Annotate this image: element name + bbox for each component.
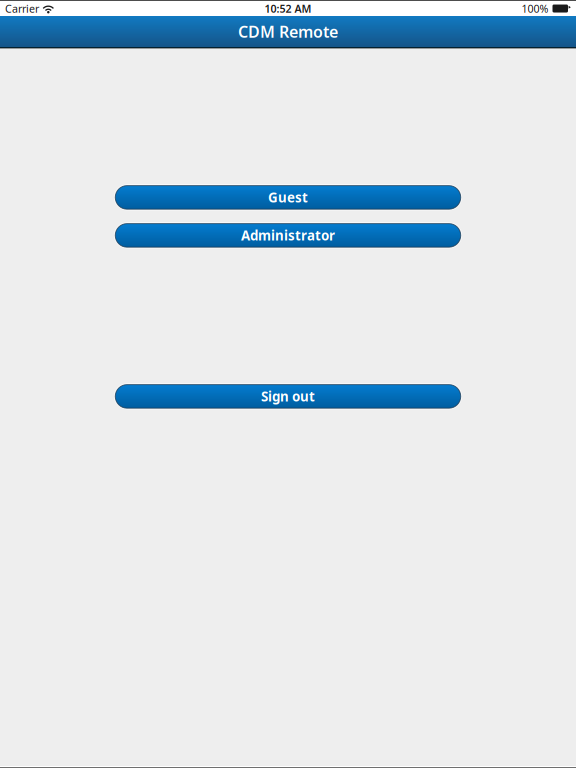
button[interactable]: Administrator (114, 222, 462, 248)
staticText: 10:52 AM (264, 1, 311, 16)
button[interactable]: Sign out (114, 383, 462, 409)
staticText: Carrier (5, 1, 39, 16)
staticText: Guest (268, 188, 308, 206)
staticText: Administrator (241, 226, 335, 244)
staticText: Sign out (261, 387, 315, 405)
button[interactable]: Guest (114, 184, 462, 210)
staticText: 100% (521, 1, 548, 16)
staticText: CDM Remote (238, 21, 338, 42)
